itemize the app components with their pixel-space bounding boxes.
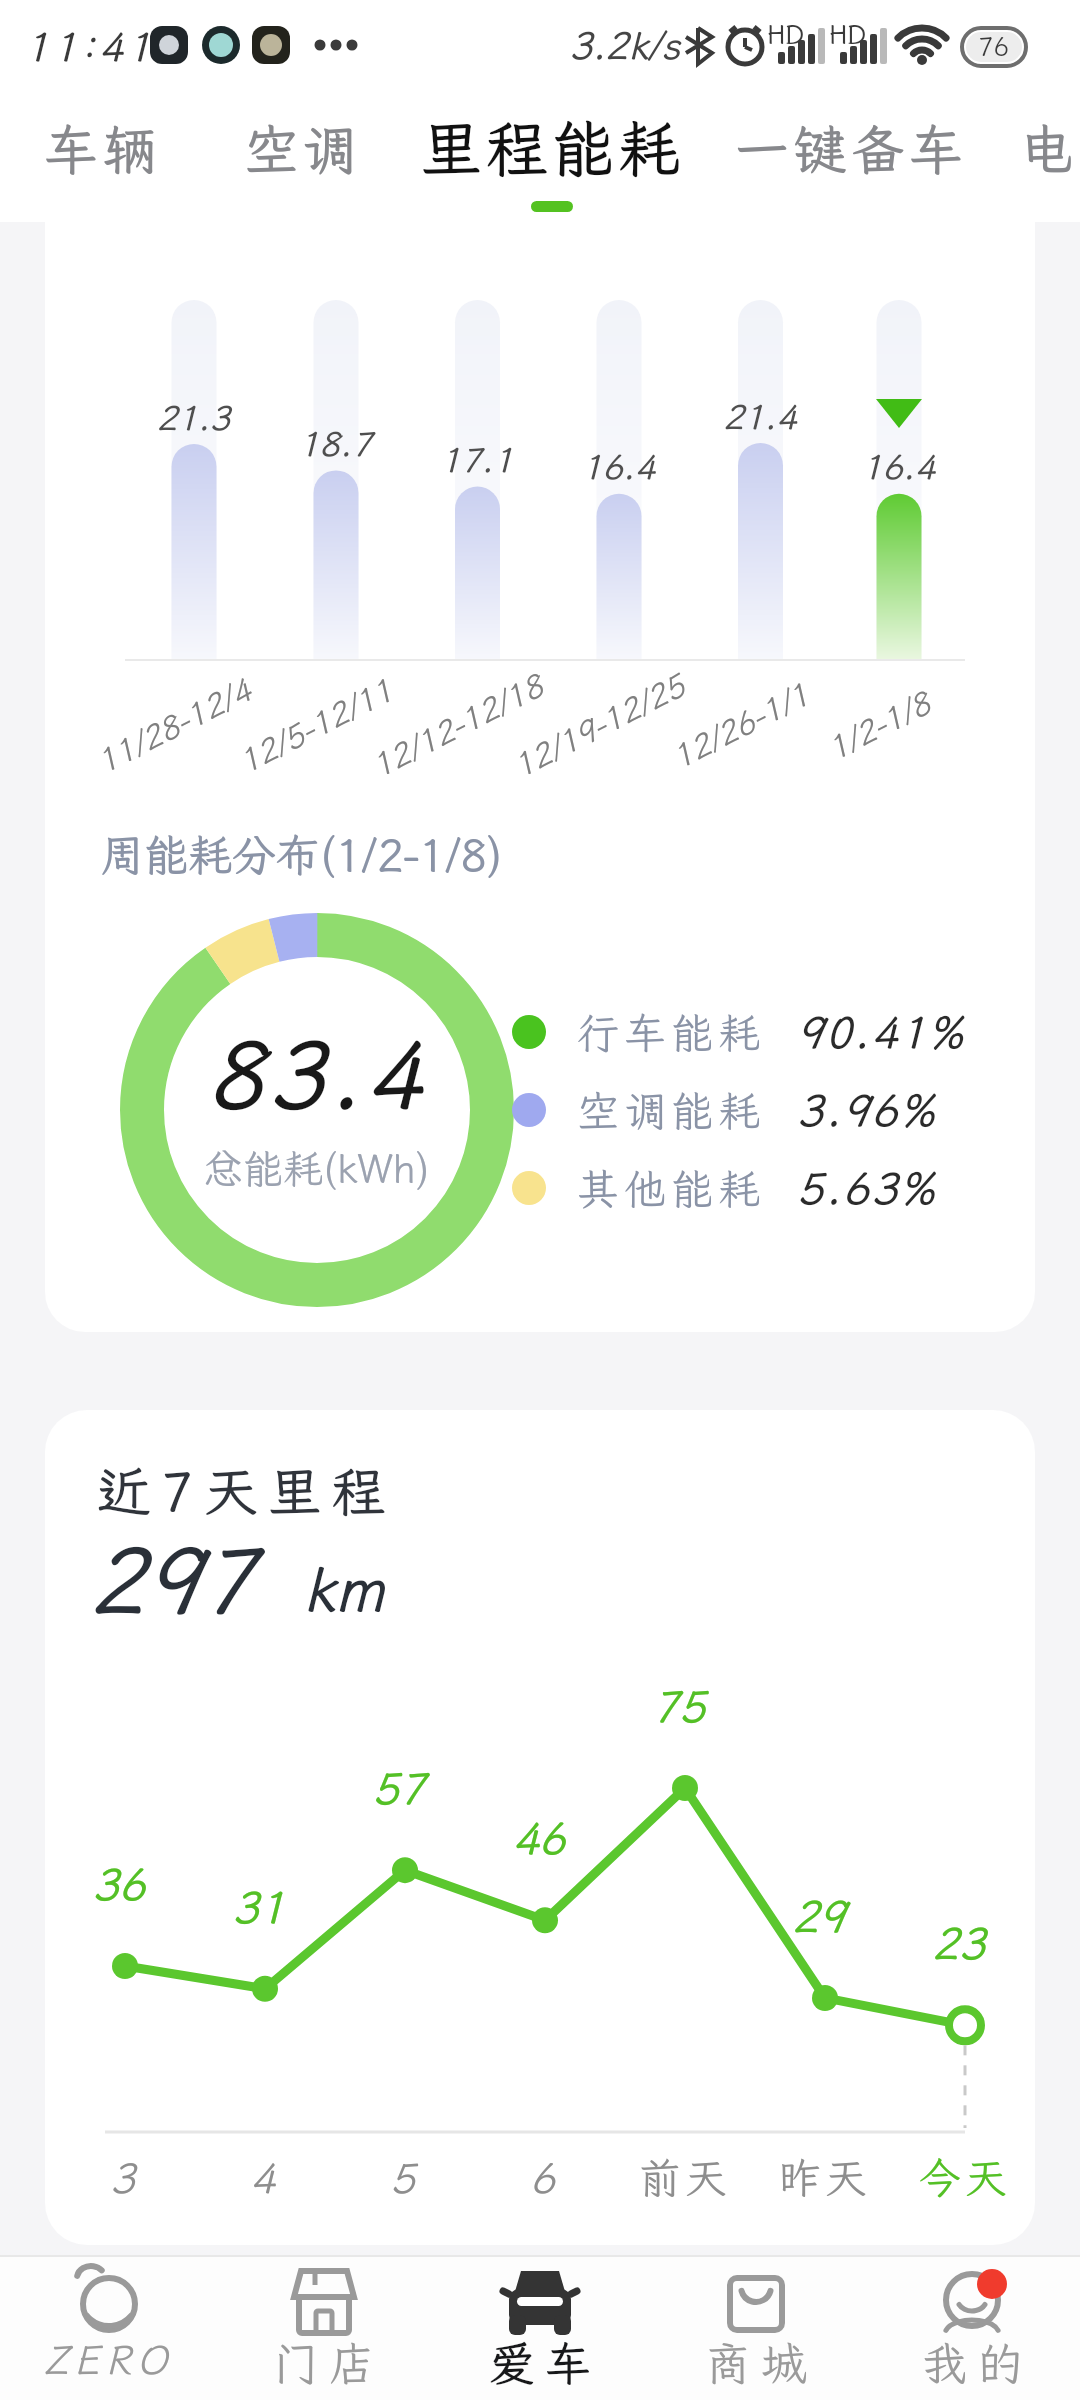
button[interactable]: 车辆 bbox=[27, 103, 177, 193]
button[interactable]: 空调 bbox=[227, 103, 377, 193]
button[interactable]: 里程能耗 bbox=[412, 103, 692, 193]
staticText: 车辆 bbox=[44, 113, 160, 184]
button[interactable]: 电池 bbox=[1003, 103, 1080, 193]
button[interactable]: 门店 bbox=[229, 2259, 419, 2399]
button[interactable]: ZERO bbox=[13, 2259, 203, 2399]
staticText: 门店 bbox=[268, 2333, 380, 2394]
staticText: 我的 bbox=[916, 2333, 1028, 2394]
staticText: ZERO bbox=[44, 2333, 173, 2386]
staticText: 里程能耗 bbox=[420, 107, 685, 189]
staticText: 空调 bbox=[244, 113, 360, 184]
staticText: 商城 bbox=[700, 2333, 812, 2394]
staticText: 一键备车 bbox=[735, 113, 967, 184]
button[interactable]: 一键备车 bbox=[711, 103, 991, 193]
button[interactable]: 爱车 bbox=[445, 2259, 635, 2399]
button[interactable]: 我的 bbox=[877, 2259, 1067, 2399]
staticText: 电池 bbox=[1020, 113, 1080, 184]
button[interactable]: 商城 bbox=[661, 2259, 851, 2399]
staticText: 爱车 bbox=[484, 2333, 596, 2394]
